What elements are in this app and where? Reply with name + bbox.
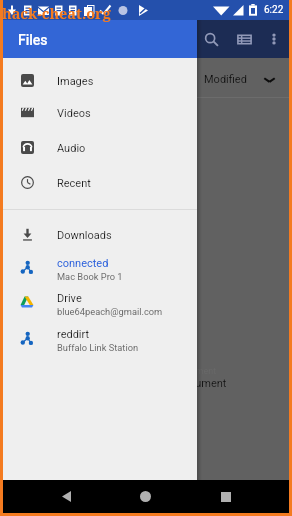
staticText: reddirt [57,328,90,341]
button[interactable]: Recent [3,167,197,200]
staticText: connected [57,257,109,270]
staticText: blue64peach@gmail.com [57,306,163,317]
staticText: Images [57,75,94,88]
staticText: Drive [57,292,82,305]
button[interactable]: Back [43,480,90,513]
button[interactable]: Modified [3,58,289,97]
button[interactable]: List view [229,24,259,54]
staticText: Last moment [163,366,217,377]
staticText: 6:22 [264,4,284,16]
staticText: Files [18,32,48,48]
staticText: hack-cheat.org [2,3,111,23]
staticText: Videos [57,107,91,120]
staticText: Modified [204,73,247,86]
button[interactable]: Drive [3,286,197,322]
button[interactable]: Audio [3,132,197,165]
button[interactable]: Downloads [3,219,197,252]
staticText: Audio [57,142,86,155]
button[interactable]: Recents [202,480,249,513]
button[interactable]: reddirt [3,322,197,358]
button[interactable]: Home [122,480,169,513]
button[interactable]: Search [196,24,226,54]
staticText: Downloads [57,229,112,242]
staticText: document [177,377,227,390]
staticText: Mac Book Pro 1 [57,271,123,282]
button[interactable]: connected [3,251,197,287]
button[interactable]: Videos [3,97,197,130]
staticText: Buffalo Link Station [57,342,139,353]
button[interactable]: Images [3,65,197,98]
staticText: Recent [57,177,91,190]
button[interactable]: More options [259,24,289,54]
